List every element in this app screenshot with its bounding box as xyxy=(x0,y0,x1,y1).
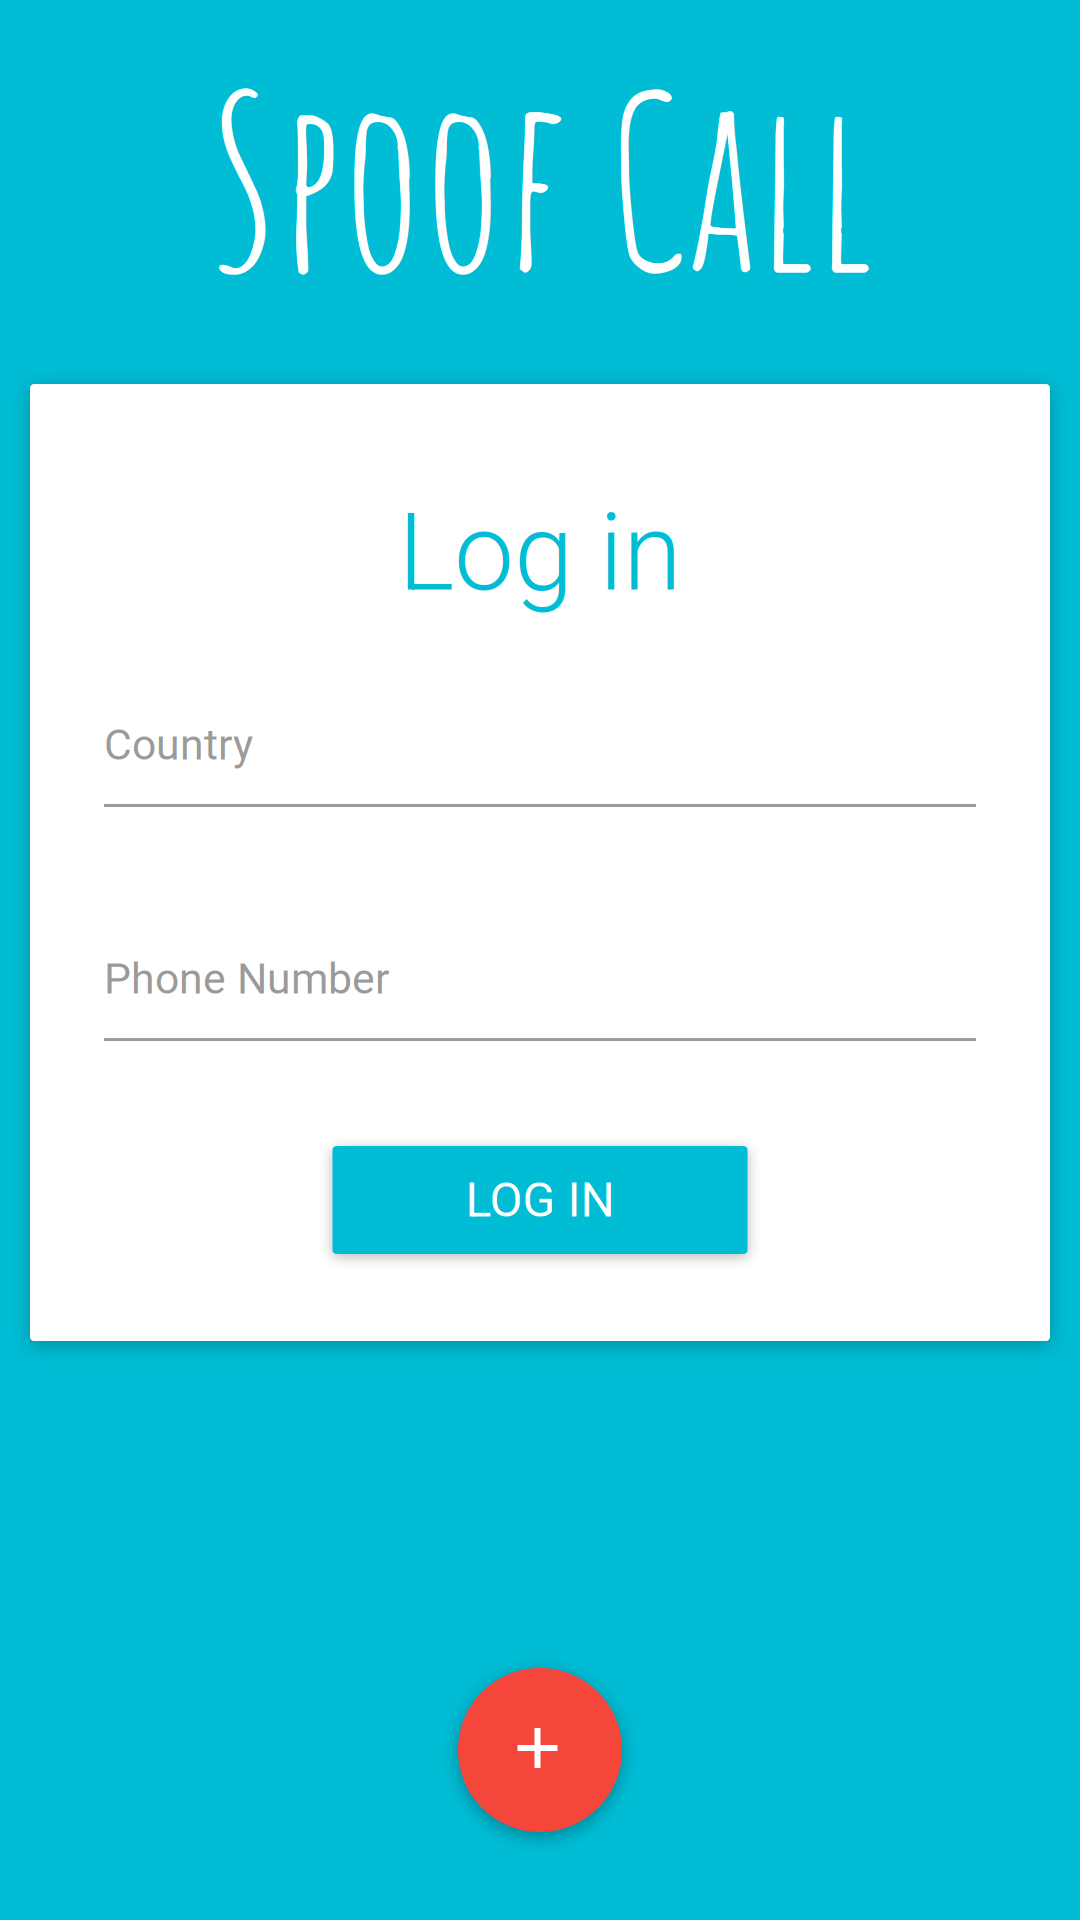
button[interactable]: LOG IN xyxy=(332,1146,747,1254)
staticText: LOG IN xyxy=(465,1172,614,1228)
staticText: Spoof Call xyxy=(207,30,872,326)
staticText: Phone Number xyxy=(104,954,389,1004)
staticText: Country xyxy=(104,720,253,770)
button[interactable]: Phone Number xyxy=(104,954,976,1042)
button[interactable]: Country xyxy=(104,720,976,808)
button[interactable]: Add xyxy=(458,1668,622,1832)
staticText: Log in xyxy=(398,490,682,615)
staticText: Spoof Call xyxy=(209,30,874,326)
staticText: Spoof Call xyxy=(207,31,872,327)
